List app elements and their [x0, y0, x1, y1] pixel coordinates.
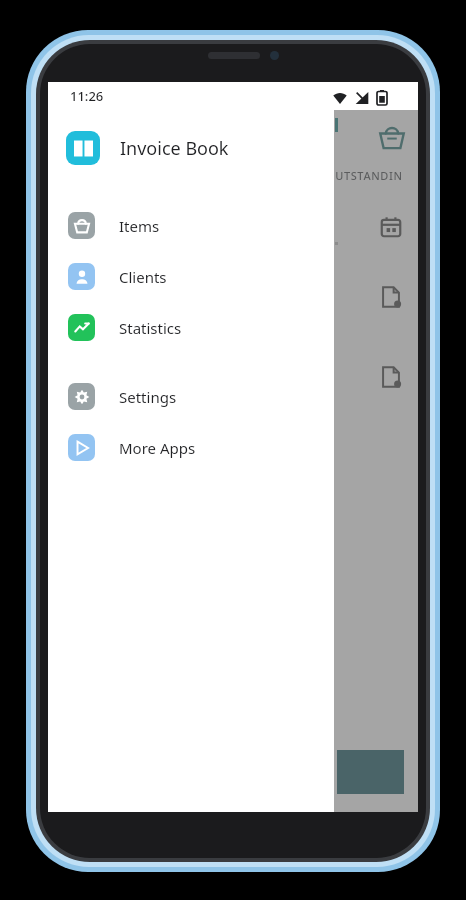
staticText: Settings — [119, 387, 177, 407]
button[interactable]: More Apps — [48, 422, 334, 473]
button[interactable]: Clients — [48, 251, 334, 302]
other: Signal — [355, 91, 369, 105]
button[interactable]: Items — [48, 200, 334, 251]
staticText: OUTSTANDING — [326, 168, 410, 198]
button[interactable]: Invoice Book — [48, 110, 334, 186]
other: Battery — [377, 90, 387, 105]
button[interactable] — [334, 110, 418, 812]
staticText: More Apps — [119, 438, 196, 458]
staticText: Items — [119, 216, 160, 236]
button[interactable]: Statistics — [48, 302, 334, 353]
staticText: Invoice Book — [120, 136, 229, 161]
staticText: 11:26 — [70, 87, 104, 105]
staticText: Clients — [119, 267, 167, 287]
staticText: Statistics — [119, 318, 182, 338]
button[interactable]: Settings — [48, 371, 334, 422]
other: Invoice Book — [74, 139, 93, 158]
other: Wi-Fi — [333, 91, 347, 105]
